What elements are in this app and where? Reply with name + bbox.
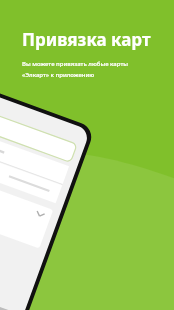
staticText: Вы можете привязать любые карты «Элкарт»…: [22, 60, 128, 79]
button[interactable]: Card binding illustration: [0, 0, 174, 310]
staticText: Привязка карт: [22, 28, 151, 51]
